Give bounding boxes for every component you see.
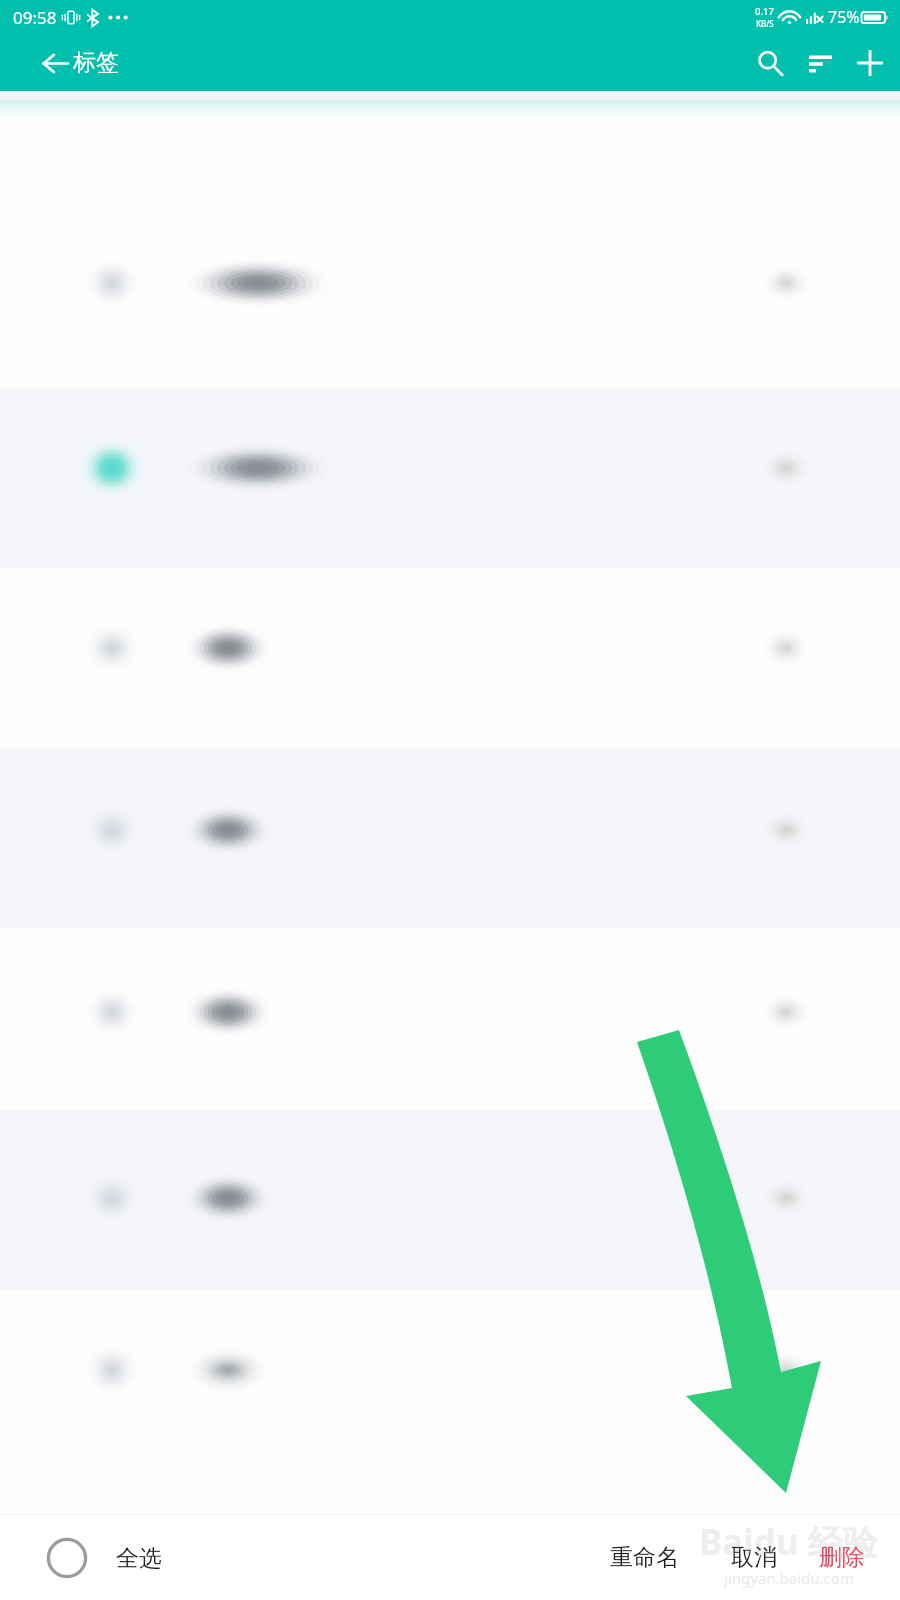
staticText: 删除 <box>819 1543 865 1572</box>
button[interactable]: 全选 <box>40 1529 172 1587</box>
staticText: 09:58 <box>13 6 57 29</box>
button[interactable]: Search <box>745 38 795 88</box>
button[interactable]: 删除 <box>808 1529 876 1586</box>
staticText: 0.17 <box>755 5 774 18</box>
button[interactable]: 取消 <box>720 1529 788 1586</box>
staticText: jingyan.baidu.com <box>724 1568 854 1588</box>
staticText: 取消 <box>731 1543 777 1572</box>
staticText: Baidu 经验 <box>699 1518 878 1566</box>
staticText: 75% <box>828 6 860 28</box>
button[interactable]: Back <box>34 42 76 84</box>
staticText: KB/S <box>756 18 774 29</box>
button[interactable]: 重命名 <box>599 1529 690 1586</box>
staticText: 重命名 <box>610 1543 679 1572</box>
button[interactable]: Sort <box>795 38 845 88</box>
staticText: 全选 <box>116 1544 162 1573</box>
button[interactable]: Add <box>845 38 895 88</box>
staticText: 标签 <box>73 48 119 77</box>
